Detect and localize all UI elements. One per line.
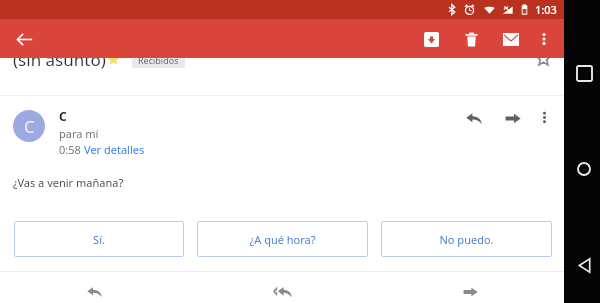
button[interactable]: Star bbox=[532, 47, 554, 69]
button[interactable]: Home bbox=[566, 153, 600, 184]
button[interactable]: Reply bbox=[0, 272, 188, 303]
button[interactable]: Recent apps bbox=[566, 58, 600, 89]
staticText: No puedo. bbox=[439, 232, 494, 247]
staticText: ¿Vas a venir mañana? bbox=[13, 175, 124, 190]
button[interactable]: Reply bbox=[459, 103, 489, 133]
button[interactable]: Delete bbox=[455, 23, 487, 55]
staticText: ¿A qué hora? bbox=[249, 232, 316, 247]
button[interactable]: ¿A qué hora? bbox=[197, 221, 368, 257]
staticText: 0:58 bbox=[59, 142, 84, 157]
button[interactable]: Back bbox=[8, 23, 40, 55]
button[interactable]: Forward bbox=[498, 103, 528, 133]
staticText: Ver detalles bbox=[84, 142, 145, 157]
staticText: Sí. bbox=[93, 232, 105, 247]
button[interactable]: Back bbox=[566, 250, 600, 281]
button[interactable]: Archive bbox=[415, 23, 447, 55]
button[interactable]: More options bbox=[529, 24, 559, 54]
button[interactable]: Reply all bbox=[188, 272, 376, 303]
staticText: 1:03 bbox=[535, 2, 557, 17]
button[interactable]: Forward bbox=[376, 272, 564, 303]
button[interactable]: More options bbox=[530, 103, 558, 131]
staticText: Recibidos bbox=[138, 54, 179, 66]
staticText: C bbox=[24, 115, 35, 138]
button[interactable]: Sí. bbox=[14, 221, 184, 257]
button[interactable]: No puedo. bbox=[381, 221, 552, 257]
staticText: C bbox=[59, 108, 67, 124]
button[interactable]: Mark unread bbox=[495, 23, 527, 55]
staticText: para mí bbox=[59, 126, 99, 141]
staticText: (sin asunto) bbox=[13, 48, 106, 71]
